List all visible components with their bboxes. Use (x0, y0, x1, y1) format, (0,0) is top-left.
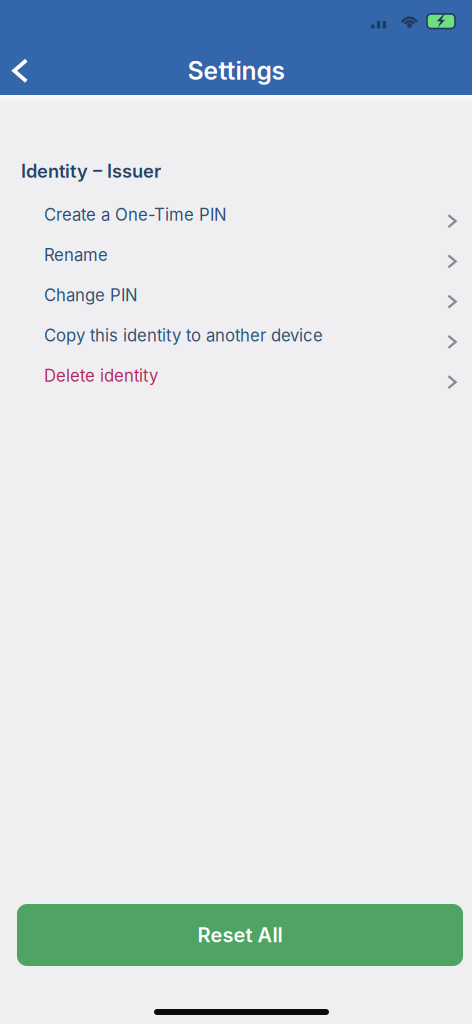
staticText: Settings (187, 56, 284, 86)
staticText: Change PIN (44, 285, 138, 305)
staticText: Copy this identity to another device (44, 325, 323, 346)
button[interactable]: Create a One-Time PIN (0, 195, 472, 235)
button[interactable]: Reset All (17, 904, 463, 966)
button[interactable]: Rename (0, 235, 472, 275)
button[interactable]: Back (0, 48, 46, 94)
staticText: Identity – Issuer (21, 160, 161, 182)
staticText: Create a One-Time PIN (44, 205, 227, 225)
button[interactable]: Delete identity (0, 356, 472, 396)
button[interactable]: Copy this identity to another device (0, 315, 472, 356)
button[interactable]: Change PIN (0, 275, 472, 315)
staticText: Reset All (197, 923, 282, 947)
staticText: Rename (44, 245, 108, 265)
staticText: Delete identity (44, 366, 158, 386)
